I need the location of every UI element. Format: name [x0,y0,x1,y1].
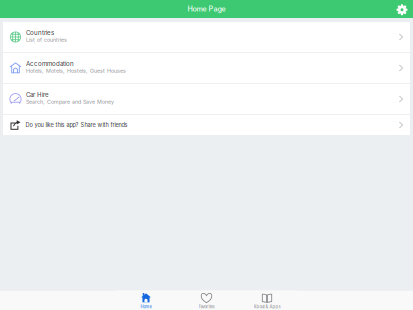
staticText: Home Page [187,5,225,13]
button[interactable]: Countries [3,22,410,52]
staticText: About & Apps [253,304,280,309]
staticText: Home [140,304,151,309]
button[interactable]: Favorites [176,290,237,310]
staticText: List of countries [26,36,67,43]
button[interactable]: Car Hire [3,84,410,114]
button[interactable]: Home [116,290,176,310]
staticText: Do you like this app? Share with friends [25,122,127,128]
staticText: Favorites [198,304,214,309]
staticText: Car Hire [26,91,49,98]
button[interactable]: Do you like this app? Share with friends [3,115,410,135]
button[interactable]: Settings [393,0,410,18]
staticText: Search, Compare and Save Money [26,98,114,105]
staticText: Accommodation [26,60,74,67]
button[interactable]: About & Apps [237,290,297,310]
button[interactable]: Accommodation [3,53,410,83]
staticText: Hotels, Motels, Hostels, Guest Houses [26,67,126,74]
staticText: Countries [26,29,54,36]
